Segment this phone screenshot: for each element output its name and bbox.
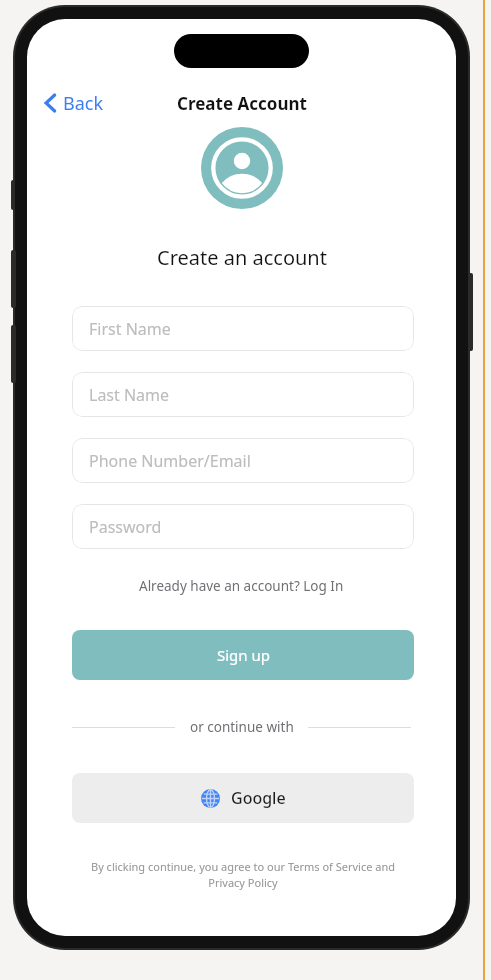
- button[interactable]: Already have an account? Log In: [135, 575, 348, 597]
- staticText: Password: [89, 516, 162, 538]
- button[interactable]: Google: [72, 773, 414, 823]
- staticText: Create Account: [177, 92, 307, 115]
- staticText: First Name: [89, 318, 171, 340]
- button[interactable]: Last Name: [72, 372, 414, 417]
- other: Google: [201, 789, 220, 808]
- staticText: Phone Number/Email: [89, 450, 251, 472]
- button[interactable]: Phone Number/Email: [72, 438, 414, 483]
- staticText: Last Name: [89, 384, 170, 406]
- button[interactable]: Sign up: [72, 630, 414, 680]
- staticText: Already have an account? Log In: [139, 577, 344, 595]
- staticText: Sign up: [217, 645, 270, 665]
- staticText: Back: [63, 91, 104, 116]
- button[interactable]: First Name: [72, 306, 414, 351]
- staticText: By clicking continue, you agree to our T…: [72, 859, 414, 890]
- staticText: or continue with: [190, 718, 294, 736]
- button[interactable]: Password: [72, 504, 414, 549]
- staticText: Google: [231, 787, 286, 809]
- button[interactable]: Back: [40, 89, 108, 117]
- staticText: Create an account: [157, 244, 327, 271]
